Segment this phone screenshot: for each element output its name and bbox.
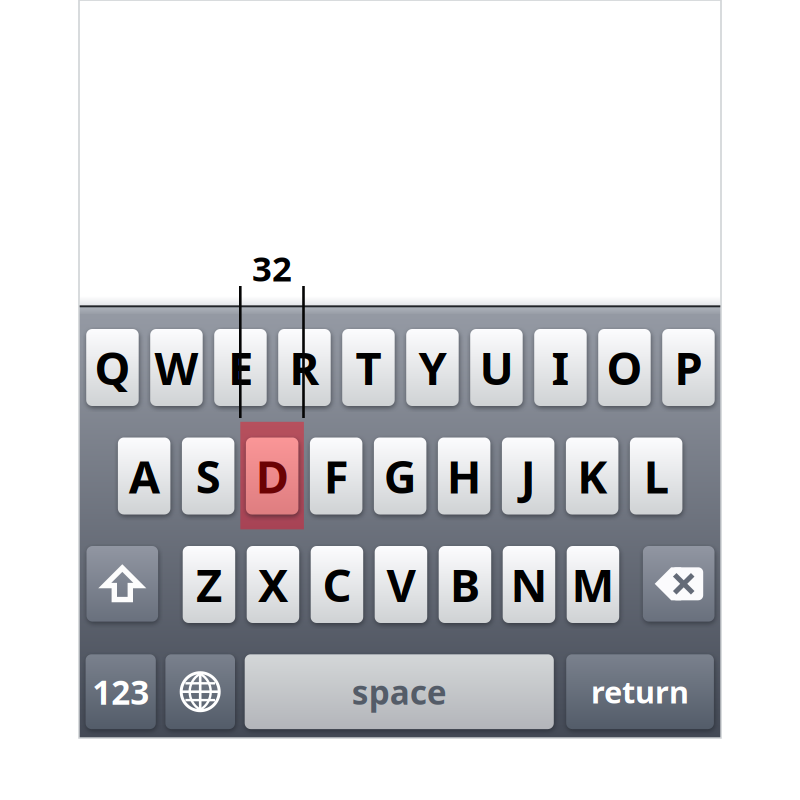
staticText: S bbox=[196, 446, 221, 506]
button[interactable]: Delete bbox=[643, 546, 714, 622]
button[interactable]: C bbox=[311, 546, 363, 623]
button[interactable]: Z bbox=[183, 546, 235, 623]
staticText: M bbox=[571, 554, 614, 615]
button[interactable]: Q bbox=[86, 329, 139, 406]
staticText: X bbox=[258, 554, 288, 615]
staticText: L bbox=[644, 446, 669, 506]
button[interactable]: U bbox=[470, 329, 523, 406]
button[interactable]: J bbox=[502, 437, 554, 514]
staticText: 123 bbox=[92, 670, 149, 714]
staticText: 32 bbox=[252, 245, 292, 291]
staticText: W bbox=[154, 337, 198, 398]
button[interactable]: N bbox=[503, 546, 555, 623]
button[interactable]: O bbox=[598, 329, 651, 406]
button[interactable]: E bbox=[214, 329, 267, 406]
button[interactable]: H bbox=[438, 437, 490, 514]
staticText: B bbox=[450, 554, 480, 615]
button[interactable]: Shift bbox=[86, 546, 158, 622]
button[interactable]: M bbox=[567, 546, 619, 623]
button[interactable]: space bbox=[245, 654, 554, 729]
staticText: J bbox=[521, 446, 536, 506]
staticText: P bbox=[674, 337, 702, 398]
button[interactable]: 123 bbox=[86, 654, 156, 729]
staticText: V bbox=[386, 554, 415, 615]
staticText: Z bbox=[196, 554, 222, 615]
staticText: N bbox=[510, 554, 547, 615]
button[interactable]: Y bbox=[406, 329, 459, 406]
button[interactable]: I bbox=[534, 329, 587, 406]
button[interactable]: V bbox=[375, 546, 427, 623]
staticText: E bbox=[228, 337, 253, 398]
staticText: O bbox=[606, 337, 642, 398]
staticText: U bbox=[479, 337, 513, 398]
button[interactable]: W bbox=[150, 329, 203, 406]
staticText: R bbox=[289, 337, 319, 398]
button[interactable]: P bbox=[662, 329, 715, 406]
staticText: Y bbox=[418, 337, 446, 398]
button[interactable]: T bbox=[342, 329, 395, 406]
staticText: I bbox=[551, 337, 569, 398]
staticText: return bbox=[591, 671, 689, 712]
button[interactable]: return bbox=[566, 654, 714, 729]
staticText: C bbox=[322, 554, 351, 615]
staticText: H bbox=[447, 446, 482, 506]
staticText: K bbox=[577, 446, 607, 506]
staticText: A bbox=[129, 446, 160, 506]
staticText: space bbox=[352, 670, 447, 714]
button[interactable]: D bbox=[246, 437, 298, 514]
button[interactable]: B bbox=[439, 546, 491, 623]
staticText: F bbox=[324, 446, 349, 506]
button[interactable]: K bbox=[566, 437, 618, 514]
staticText: G bbox=[384, 446, 417, 506]
button[interactable]: L bbox=[630, 437, 682, 514]
button[interactable]: R bbox=[278, 329, 331, 406]
button[interactable]: S bbox=[182, 437, 234, 514]
button[interactable]: A bbox=[118, 437, 170, 514]
button[interactable]: F bbox=[310, 437, 362, 514]
staticText: D bbox=[256, 446, 289, 506]
staticText: Q bbox=[94, 337, 130, 398]
staticText: T bbox=[355, 337, 381, 398]
button[interactable]: G bbox=[374, 437, 426, 514]
button[interactable]: Next keyboard bbox=[165, 654, 235, 729]
button[interactable]: X bbox=[247, 546, 299, 623]
